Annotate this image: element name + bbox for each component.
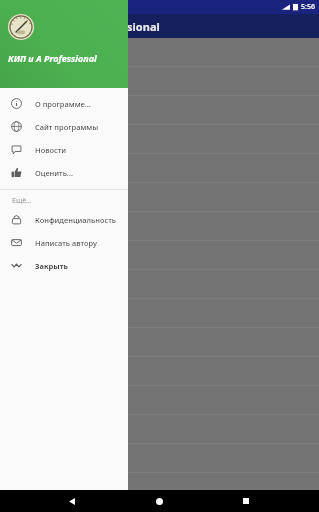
staticText: Оценить... (35, 168, 73, 178)
button[interactable]: Оценить... (0, 161, 128, 184)
button[interactable]: Home (145, 490, 173, 512)
button[interactable]: Recent apps (232, 490, 260, 512)
button[interactable]: Back (0, 14, 34, 38)
staticText: КИП и А Professional (8, 52, 97, 64)
button[interactable]: Back (58, 490, 86, 512)
staticText: Конфиденциальность (35, 215, 117, 225)
staticText: Сайт программы (35, 122, 99, 132)
button[interactable]: О программе... (0, 92, 128, 115)
staticText: 5:56 (301, 2, 315, 12)
staticText: КИП и А Professional (44, 19, 160, 34)
button[interactable]: Сайт программы (0, 115, 128, 138)
staticText: Новости (35, 145, 67, 155)
staticText: Ещё... (12, 196, 32, 206)
staticText: Закрыть (35, 261, 68, 271)
staticText: О программе... (35, 99, 91, 109)
button[interactable]: Закрыть (0, 254, 128, 277)
button[interactable]: Новости (0, 138, 128, 161)
staticText: Написать автору (35, 238, 97, 248)
button[interactable]: Написать автору (0, 231, 128, 254)
button[interactable]: Конфиденциальность (0, 208, 128, 231)
